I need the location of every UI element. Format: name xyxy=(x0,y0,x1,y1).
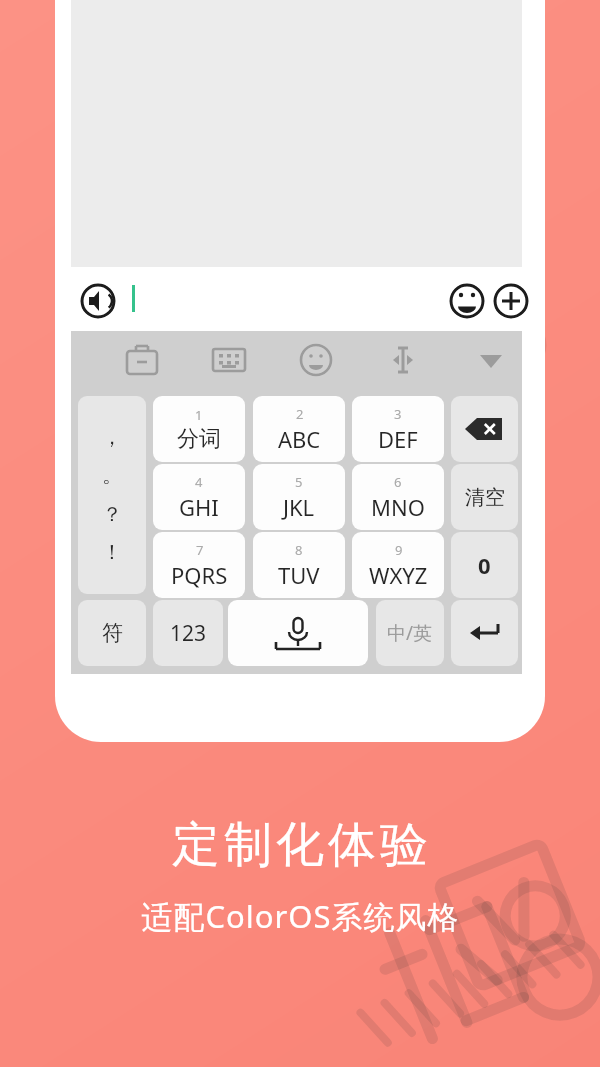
button[interactable]: 4 xyxy=(153,464,245,530)
staticText: TUV xyxy=(278,560,320,590)
button[interactable]: 符 xyxy=(78,600,146,666)
button[interactable]: 6 xyxy=(352,464,444,530)
button[interactable]: 2 xyxy=(253,396,345,462)
button[interactable]: Space / Voice xyxy=(228,600,368,666)
staticText: JKL xyxy=(283,492,315,522)
button[interactable] xyxy=(127,278,443,319)
button[interactable]: More xyxy=(493,283,529,319)
button[interactable]: Emoji xyxy=(297,341,335,379)
staticText: 123 xyxy=(170,619,207,648)
staticText: MNO xyxy=(371,492,425,522)
staticText: PQRS xyxy=(171,560,228,590)
button[interactable]: 3 xyxy=(352,396,444,462)
staticText: 8 xyxy=(295,541,303,559)
staticText: 中/英 xyxy=(387,620,433,646)
staticText: 5 xyxy=(295,473,303,491)
button[interactable]: Keyboard layout xyxy=(210,341,248,379)
staticText: 9 xyxy=(395,541,403,559)
button[interactable]: Enter xyxy=(451,600,518,666)
button[interactable]: 清空 xyxy=(451,464,518,530)
staticText: 定制化体验 xyxy=(170,815,430,875)
staticText: 3 xyxy=(394,405,402,423)
staticText: 4 xyxy=(195,473,203,491)
button[interactable]: 123 xyxy=(153,600,223,666)
button[interactable]: 1 xyxy=(153,396,245,462)
staticText: ， xyxy=(102,425,122,450)
staticText: 分词 xyxy=(177,425,221,453)
staticText: ！ xyxy=(102,540,122,565)
staticText: 符 xyxy=(102,620,123,646)
button[interactable]: Voice input xyxy=(80,283,116,319)
staticText: 适配ColorOS系统风格 xyxy=(141,895,460,937)
staticText: DEF xyxy=(378,424,418,454)
button[interactable]: 5 xyxy=(253,464,345,530)
button[interactable]: 8 xyxy=(253,532,345,598)
button[interactable]: 9 xyxy=(352,532,444,598)
button[interactable]: Backspace xyxy=(451,396,518,462)
button[interactable]: 中/英 xyxy=(376,600,444,666)
staticText: ？ xyxy=(102,502,122,527)
staticText: ABC xyxy=(278,424,321,454)
button[interactable]: Punctuation xyxy=(78,396,146,594)
staticText: 0 xyxy=(478,550,491,580)
staticText: 2 xyxy=(296,405,304,423)
button[interactable]: Cursor move xyxy=(384,341,422,379)
staticText: 6 xyxy=(394,473,402,491)
staticText: 1 xyxy=(195,406,203,424)
button[interactable]: Emoji xyxy=(449,283,485,319)
button[interactable]: Hide keyboard xyxy=(472,341,510,379)
button[interactable]: Clipboard xyxy=(123,341,161,379)
button[interactable]: 7 xyxy=(153,532,245,598)
staticText: GHI xyxy=(179,492,219,522)
button[interactable]: 0 xyxy=(451,532,518,598)
staticText: 清空 xyxy=(465,485,505,510)
staticText: 7 xyxy=(196,541,204,559)
staticText: WXYZ xyxy=(369,560,428,590)
staticText: 。 xyxy=(102,463,122,488)
